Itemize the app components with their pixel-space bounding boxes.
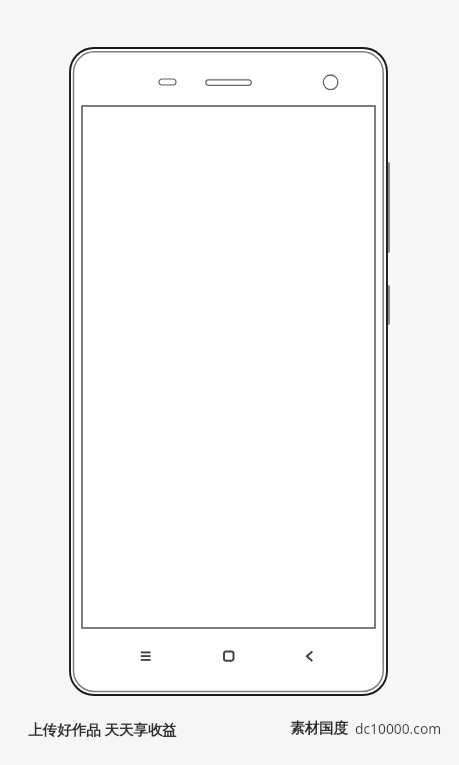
button[interactable]: Home (187, 634, 271, 678)
button[interactable]: Phone screen (82, 106, 375, 628)
button[interactable]: Power key (380, 285, 392, 325)
staticText: 上传好作品 天天享收益 (28, 719, 177, 739)
staticText: 素材国度 (290, 719, 348, 737)
button[interactable]: Volume key (380, 162, 392, 253)
staticText: dc10000.com (355, 719, 442, 738)
button[interactable]: Front camera (321, 73, 340, 92)
button[interactable]: Menu (104, 634, 188, 678)
button[interactable]: Back (270, 634, 354, 678)
